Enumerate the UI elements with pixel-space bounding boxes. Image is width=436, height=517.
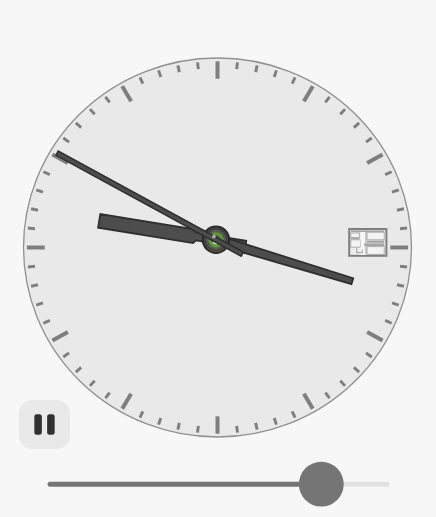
button[interactable]: Seek position bbox=[28, 462, 408, 507]
button[interactable]: Pause bbox=[19, 400, 70, 449]
